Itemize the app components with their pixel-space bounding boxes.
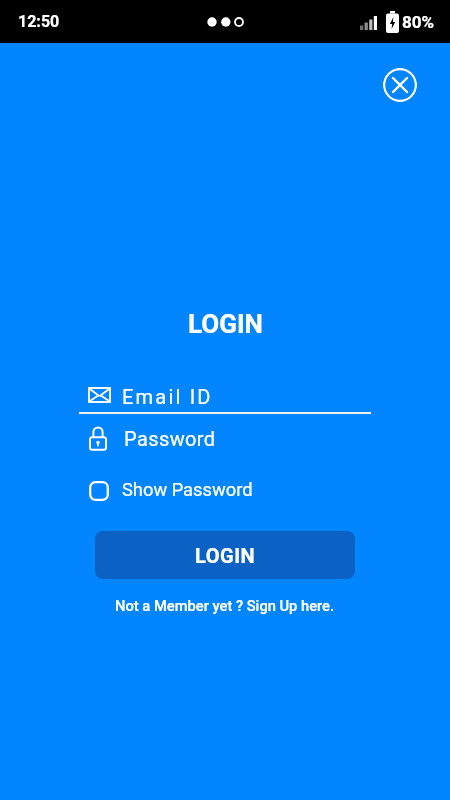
staticText: Not a Member yet ? Sign Up here. xyxy=(115,597,335,614)
button[interactable]: Password xyxy=(79,422,371,456)
staticText: Email ID xyxy=(122,385,213,408)
button[interactable]: Not a Member yet ? Sign Up here. xyxy=(115,592,335,618)
staticText: 80% xyxy=(402,12,435,32)
staticText: Show Password xyxy=(122,479,253,500)
staticText: 12:50 xyxy=(18,12,60,31)
button[interactable]: Show Password xyxy=(79,474,309,504)
button[interactable]: LOGIN xyxy=(95,531,355,579)
button[interactable]: Email ID xyxy=(79,383,371,414)
staticText: LOGIN xyxy=(188,309,263,339)
button[interactable] xyxy=(383,68,417,102)
staticText: Password xyxy=(124,427,216,450)
staticText: LOGIN xyxy=(195,544,256,567)
